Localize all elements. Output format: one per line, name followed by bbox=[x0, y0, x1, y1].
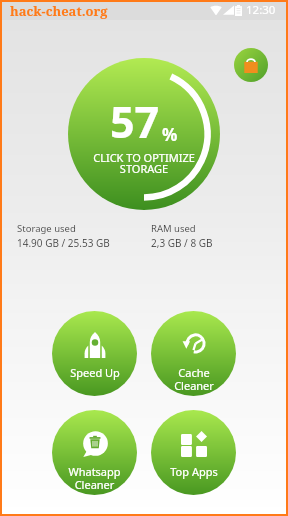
button[interactable]: 57 bbox=[68, 58, 220, 210]
button[interactable]: Speed Up bbox=[52, 311, 137, 396]
staticText: Cache Cleaner bbox=[174, 365, 214, 393]
staticText: CLICK TO OPTIMIZE STORAGE bbox=[93, 150, 195, 176]
staticText: Whatsapp Cleaner bbox=[68, 464, 121, 492]
staticText: Speed Up bbox=[70, 365, 120, 380]
staticText: 12:30 bbox=[246, 2, 276, 18]
staticText: Storage used bbox=[17, 222, 76, 235]
staticText: 57 bbox=[110, 92, 160, 151]
staticText: RAM used bbox=[151, 222, 196, 235]
button[interactable]: Whatsapp Cleaner bbox=[52, 410, 137, 495]
staticText: hack-cheat.org bbox=[10, 2, 108, 20]
button[interactable]: Cache Cleaner bbox=[151, 311, 236, 396]
staticText: Top Apps bbox=[170, 464, 218, 479]
button[interactable]: Store bbox=[234, 48, 268, 82]
staticText: % bbox=[162, 123, 178, 146]
staticText: 14.90 GB / 25.53 GB bbox=[17, 236, 110, 250]
staticText: 2,3 GB / 8 GB bbox=[151, 236, 213, 250]
button[interactable]: Top Apps bbox=[151, 410, 236, 495]
